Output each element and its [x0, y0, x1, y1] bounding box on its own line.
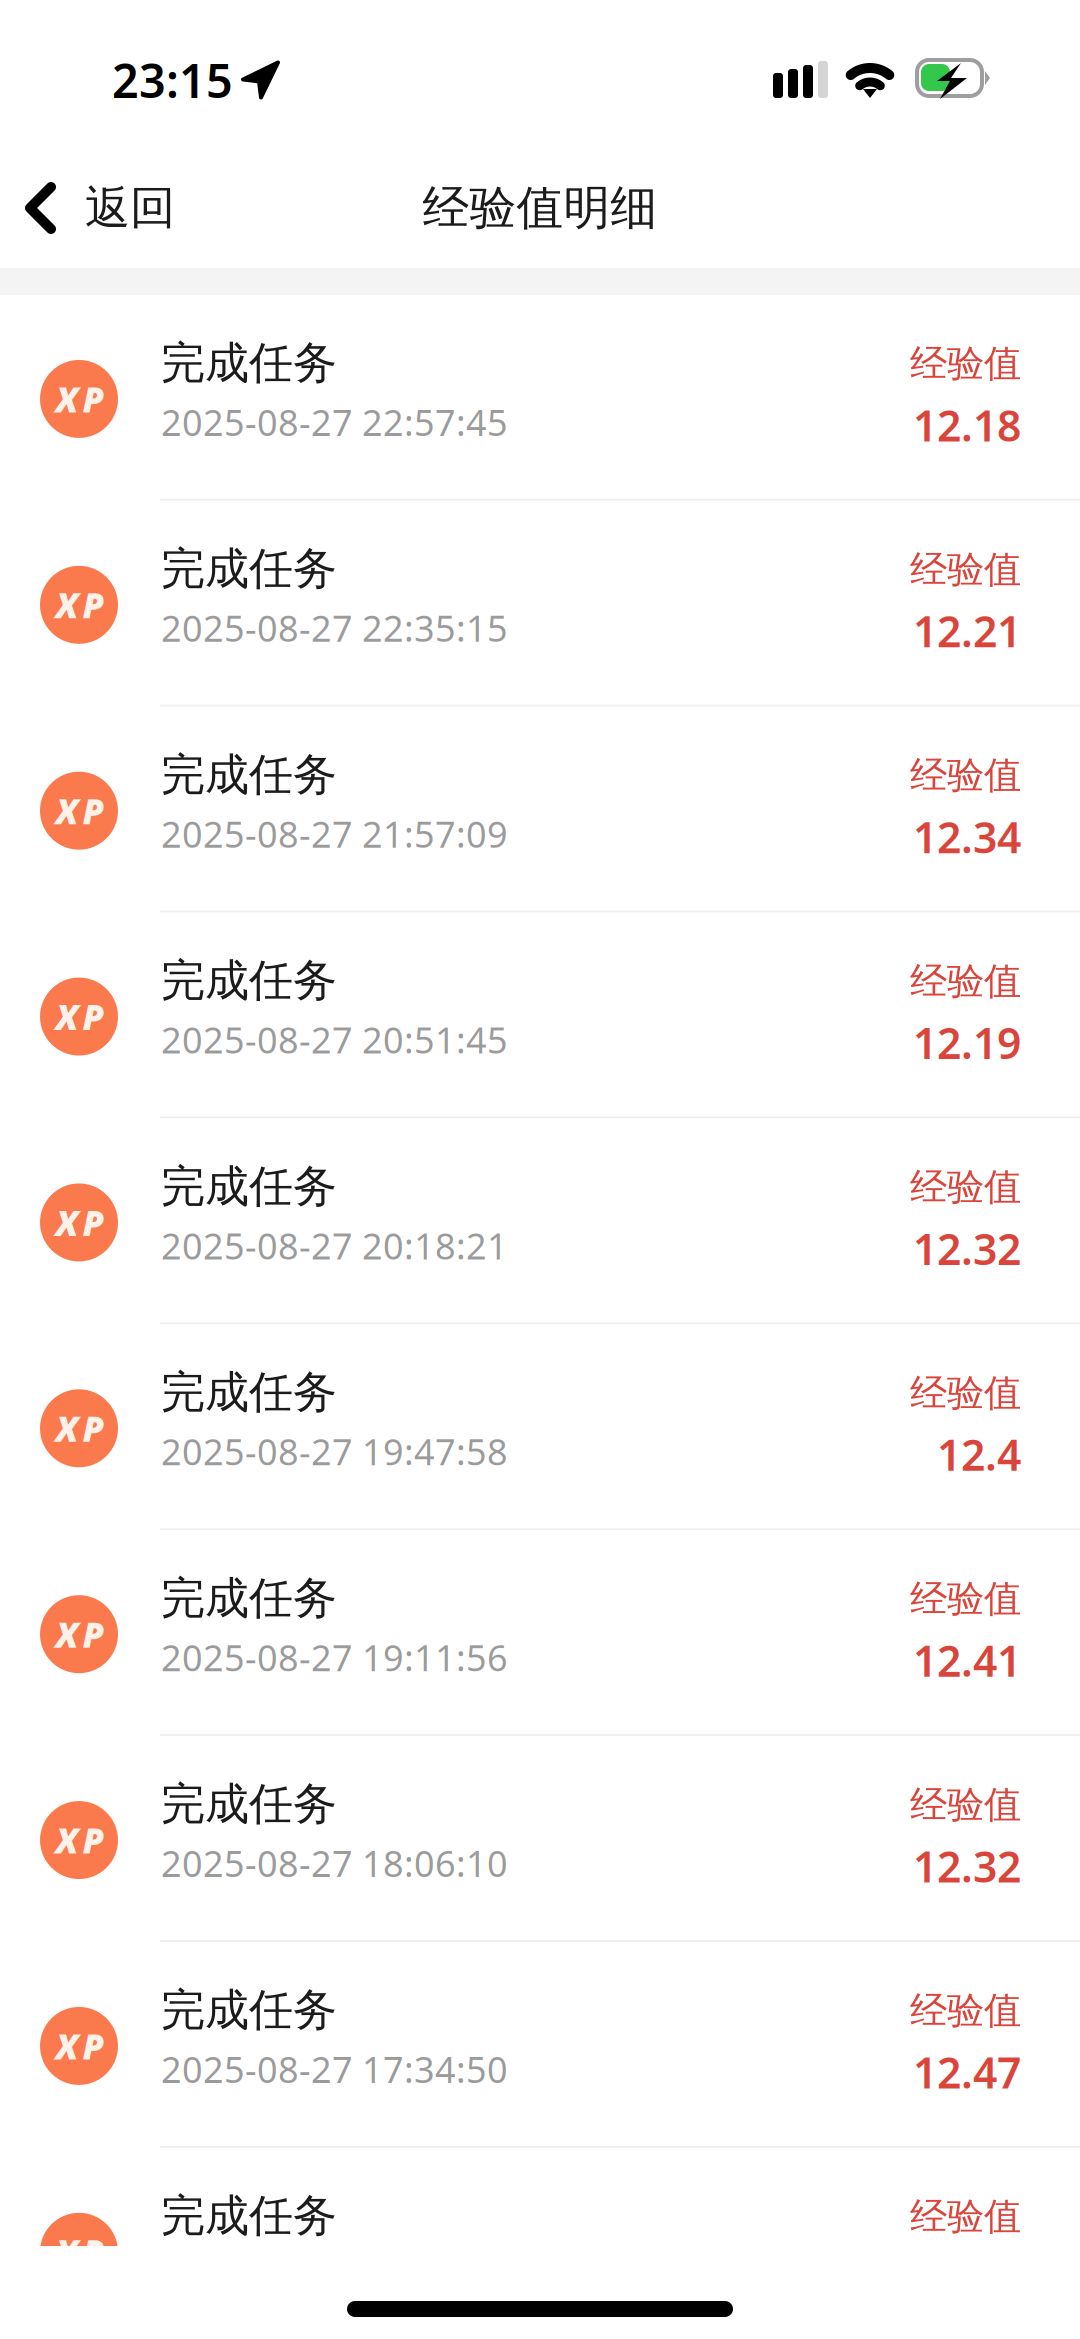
button[interactable]: XP [0, 913, 1080, 1116]
staticText: XP [55, 1199, 104, 1245]
staticText: 12.41 [913, 1632, 1021, 1688]
staticText: 12.47 [913, 2043, 1021, 2100]
staticText: 经验值 [910, 958, 1021, 1004]
staticText: 完成任务 [161, 1571, 337, 1625]
button[interactable]: XP [0, 1736, 1080, 1940]
staticText: 返回 [85, 180, 175, 236]
staticText: 2025-08-27 22:35:15 [161, 604, 508, 652]
staticText: 经验值 [910, 1988, 1021, 2034]
staticText: 12.21 [913, 602, 1021, 659]
button[interactable]: XP [0, 295, 1080, 499]
staticText: 完成任务 [161, 1159, 337, 1213]
staticText: 2025-08-27 22:57:45 [161, 398, 508, 446]
staticText: 经验值明细 [422, 179, 657, 237]
button[interactable]: XP [0, 2148, 1080, 2339]
button[interactable]: 返回 [0, 160, 175, 256]
staticText: 2025-08-27 20:18:21 [161, 1222, 508, 1269]
staticText: XP [55, 788, 104, 834]
staticText: XP [55, 1405, 104, 1451]
staticText: 完成任务 [161, 1365, 337, 1419]
button[interactable]: XP [0, 707, 1080, 911]
staticText: 完成任务 [161, 748, 337, 802]
staticText: 完成任务 [161, 336, 337, 390]
staticText: 完成任务 [161, 954, 337, 1008]
staticText: 完成任务 [161, 1983, 337, 2037]
staticText: 2025-08-27 17:34:50 [161, 2045, 508, 2093]
staticText: 经验值 [910, 1370, 1021, 1416]
staticText: XP [55, 2023, 104, 2069]
button[interactable]: XP [0, 1942, 1080, 2146]
staticText: 2025-08-27 20:51:45 [161, 1016, 508, 1063]
staticText: XP [55, 993, 104, 1039]
staticText: XP [55, 582, 104, 628]
staticText: 经验值 [910, 1164, 1021, 1210]
button[interactable]: XP [0, 501, 1080, 705]
button[interactable]: XP [0, 1118, 1080, 1322]
button[interactable]: XP [0, 1530, 1080, 1734]
staticText: 经验值 [910, 2194, 1021, 2239]
staticText: 经验值 [910, 547, 1021, 592]
staticText: XP [55, 2229, 104, 2275]
staticText: 完成任务 [161, 2189, 337, 2243]
staticText: 2025-08-27 19:11:56 [161, 1633, 508, 1681]
staticText: XP [55, 1817, 104, 1863]
staticText: 2025-08-27 21:57:09 [161, 810, 508, 858]
staticText: XP [55, 376, 104, 422]
staticText: 经验值 [910, 1576, 1021, 1622]
staticText: 2025-08-27 19:47:58 [161, 1427, 508, 1475]
staticText: 经验值 [910, 1782, 1021, 1828]
button[interactable]: XP [0, 1324, 1080, 1528]
staticText: 12.34 [913, 808, 1021, 865]
staticText: 12.18 [913, 396, 1021, 453]
staticText: 23:15 [112, 49, 233, 111]
staticText: 经验值 [910, 752, 1021, 798]
staticText: XP [55, 1611, 104, 1657]
staticText: 12.32 [913, 1838, 1021, 1894]
staticText: 12.19 [913, 1014, 1021, 1071]
staticText: 完成任务 [161, 1777, 337, 1831]
staticText: 经验值 [910, 341, 1021, 387]
staticText: 12.32 [913, 1220, 1021, 1277]
staticText: 完成任务 [161, 542, 337, 596]
staticText: 2025-08-27 18:06:10 [161, 1839, 508, 1887]
staticText: 12.4 [937, 1426, 1021, 1483]
